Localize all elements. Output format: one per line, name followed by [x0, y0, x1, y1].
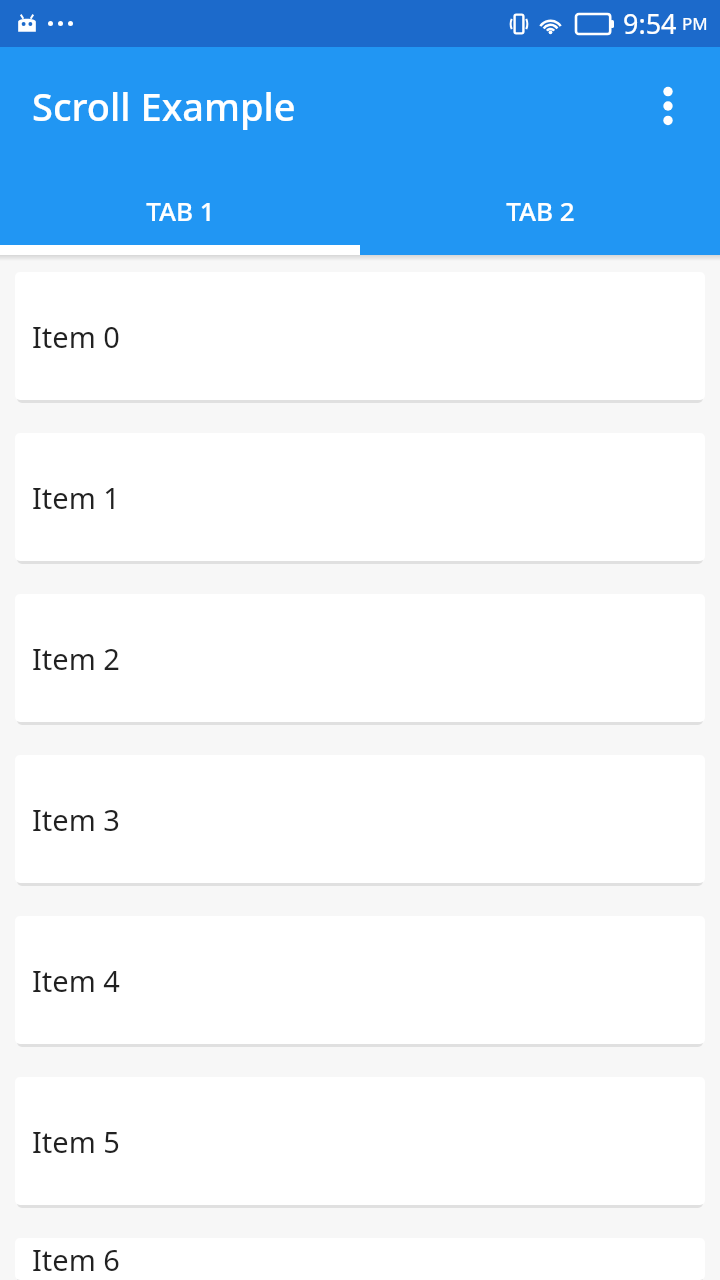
button[interactable]: Item 0 — [15, 272, 705, 400]
staticText: TAB 2 — [506, 193, 575, 228]
button[interactable]: TAB 2 — [360, 165, 720, 255]
staticText: Item 0 — [32, 317, 120, 356]
staticText: TAB 1 — [146, 193, 215, 228]
button[interactable]: Item 4 — [15, 916, 705, 1044]
staticText: Item 6 — [32, 1240, 120, 1279]
button[interactable]: Item 3 — [15, 755, 705, 883]
button[interactable]: Item 2 — [15, 594, 705, 722]
staticText: Item 3 — [32, 800, 120, 839]
button[interactable]: More options — [640, 78, 696, 134]
staticText: PM — [682, 12, 708, 35]
staticText: Item 5 — [32, 1122, 120, 1161]
button[interactable]: Item 1 — [15, 433, 705, 561]
button[interactable]: Item 5 — [15, 1077, 705, 1205]
staticText: Scroll Example — [32, 80, 296, 132]
staticText: Item 1 — [32, 478, 120, 517]
staticText: Item 4 — [32, 961, 120, 1000]
button[interactable]: TAB 1 — [0, 165, 360, 255]
staticText: Item 2 — [32, 639, 120, 678]
staticText: 9:54 — [623, 5, 677, 42]
button[interactable]: Item 6 — [15, 1238, 705, 1280]
